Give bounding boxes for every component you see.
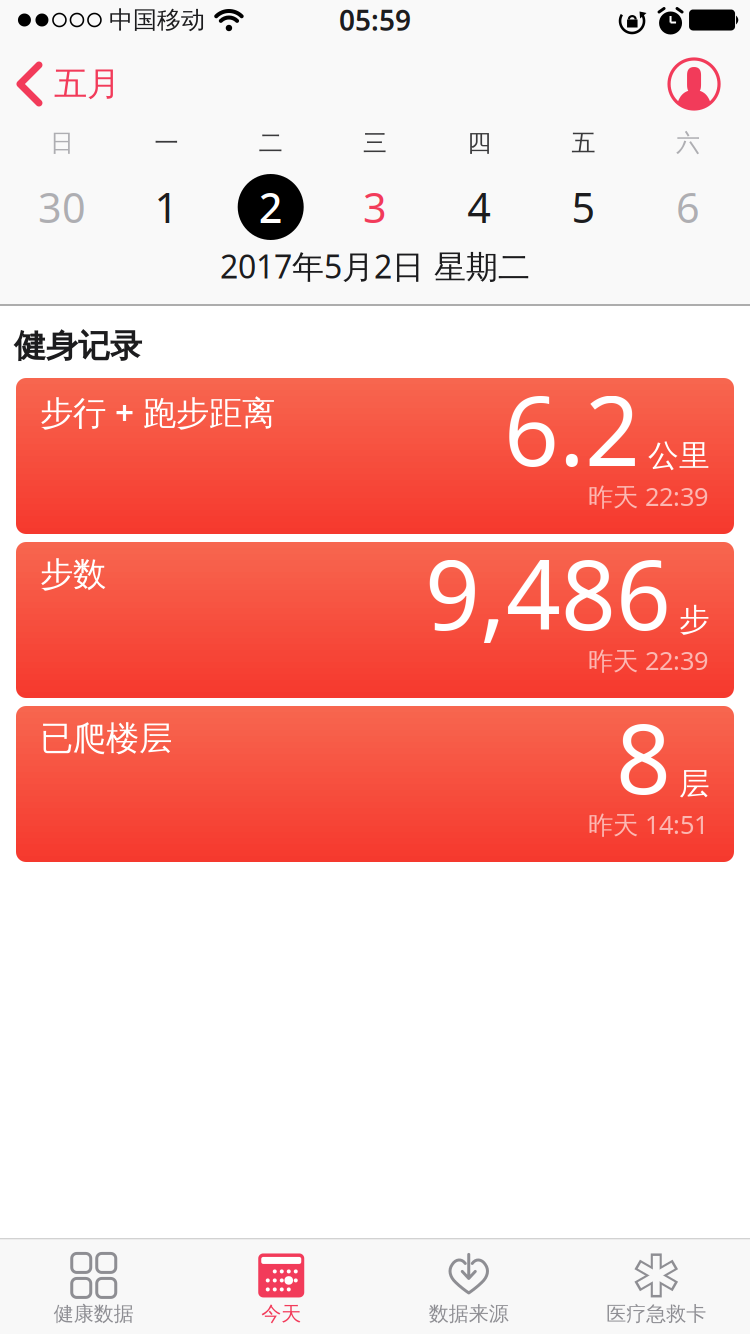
- staticText: 05:59: [339, 1, 411, 39]
- staticText: 健身记录: [14, 326, 142, 366]
- staticText: 公里: [648, 437, 710, 475]
- staticText: 6: [676, 180, 700, 234]
- staticText: 数据来源: [429, 1301, 509, 1326]
- staticText: 9,486: [425, 529, 671, 656]
- button[interactable]: 今天: [187, 1253, 375, 1326]
- button[interactable]: 返回五月: [14, 61, 120, 107]
- staticText: 昨天 22:39: [588, 643, 708, 677]
- staticText: 6.2: [504, 365, 640, 492]
- staticText: 一: [154, 128, 178, 158]
- button[interactable]: 5: [531, 174, 636, 240]
- staticText: 1: [154, 180, 178, 234]
- staticText: 四: [467, 128, 491, 158]
- staticText: 健康数据: [54, 1301, 134, 1326]
- staticText: 日: [50, 128, 74, 158]
- staticText: 五: [572, 128, 596, 158]
- button[interactable]: 6: [636, 174, 740, 240]
- staticText: 已爬楼层: [40, 718, 172, 759]
- staticText: 五月: [54, 63, 120, 104]
- staticText: 六: [676, 128, 700, 158]
- button[interactable]: 个人资料: [669, 59, 719, 109]
- staticText: 今天: [261, 1301, 301, 1326]
- staticText: 30: [38, 180, 86, 234]
- button[interactable]: 30: [10, 174, 114, 240]
- button[interactable]: 2: [219, 174, 323, 240]
- button[interactable]: 步行 + 跑步距离: [16, 378, 734, 534]
- button[interactable]: 健康数据: [0, 1253, 187, 1326]
- staticText: 步行 + 跑步距离: [40, 390, 275, 434]
- staticText: 昨天 14:51: [588, 807, 708, 841]
- staticText: 三: [363, 128, 387, 158]
- staticText: 3: [363, 180, 387, 234]
- staticText: 5: [572, 180, 596, 234]
- staticText: 4: [467, 180, 491, 234]
- staticText: 医疗急救卡: [606, 1301, 706, 1326]
- staticText: 步数: [40, 554, 106, 595]
- button[interactable]: 4: [427, 174, 531, 240]
- button[interactable]: 医疗急救卡: [562, 1253, 750, 1326]
- staticText: 8: [616, 693, 671, 820]
- button[interactable]: 3: [323, 174, 427, 240]
- button[interactable]: 步数: [16, 542, 734, 698]
- button[interactable]: 已爬楼层: [16, 706, 734, 862]
- staticText: 2: [259, 180, 283, 234]
- button[interactable]: 数据来源: [375, 1253, 562, 1326]
- button[interactable]: 1: [114, 174, 219, 240]
- staticText: 昨天 22:39: [588, 479, 708, 513]
- staticText: 中国移动: [109, 5, 205, 35]
- staticText: 步: [679, 601, 710, 639]
- staticText: 二: [259, 128, 283, 158]
- staticText: 2017年5月2日 星期二: [220, 245, 530, 287]
- staticText: 层: [679, 765, 710, 803]
